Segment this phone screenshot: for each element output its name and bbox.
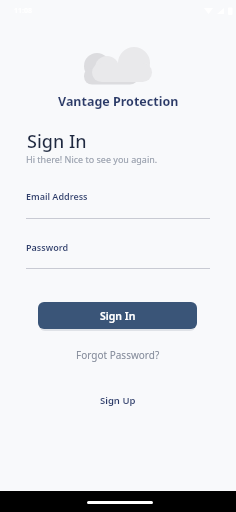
staticText: Sign In <box>100 309 136 323</box>
button[interactable]: Sign Up <box>100 394 136 407</box>
staticText: Sign In <box>27 129 87 154</box>
staticText: Hi there! Nice to see you again. <box>26 153 158 165</box>
staticText: Password <box>26 241 69 253</box>
button[interactable]: Forgot Password? <box>76 348 160 362</box>
button[interactable]: Sign In <box>38 302 197 329</box>
staticText: Vantage Protection <box>58 93 179 110</box>
staticText: Email Address <box>26 190 88 202</box>
